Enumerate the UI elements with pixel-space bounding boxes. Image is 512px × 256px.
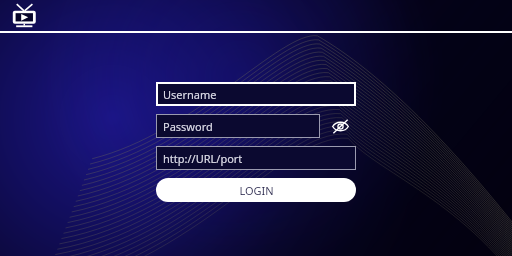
other: App logo [10, 3, 38, 29]
button[interactable]: http://URL/port [156, 146, 356, 170]
staticText: http://URL/port [163, 151, 243, 166]
staticText: Username [163, 87, 217, 102]
button[interactable]: Username [156, 82, 356, 106]
button[interactable]: LOGIN [156, 178, 356, 202]
staticText: LOGIN [239, 183, 274, 198]
button[interactable]: Show password [328, 114, 352, 138]
button[interactable]: Password [156, 114, 320, 138]
staticText: Password [163, 119, 213, 134]
